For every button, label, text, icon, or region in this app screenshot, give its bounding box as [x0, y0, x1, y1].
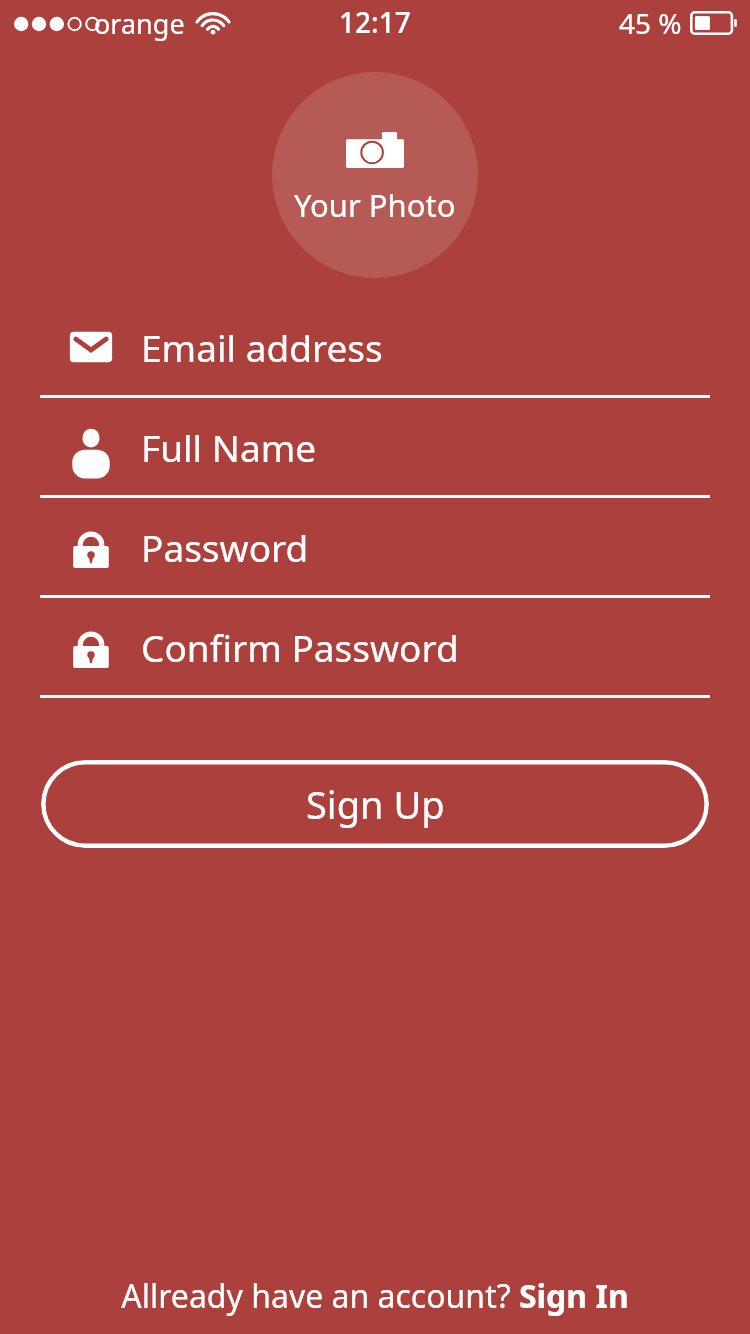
- staticText: Email address: [141, 322, 383, 372]
- staticText: Allready have an account? Sign In: [121, 1274, 629, 1318]
- staticText: 45 %: [619, 4, 682, 42]
- staticText: 12:17: [339, 3, 411, 41]
- button[interactable]: Email address: [40, 298, 710, 398]
- staticText: Your Photo: [294, 184, 456, 226]
- button[interactable]: Allready have an account? Sign In: [0, 1258, 750, 1334]
- staticText: Full Name: [141, 422, 317, 472]
- staticText: Confirm Password: [141, 622, 459, 672]
- button[interactable]: Password: [40, 498, 710, 598]
- button[interactable]: Sign Up: [41, 760, 709, 848]
- staticText: orange: [94, 5, 185, 42]
- button[interactable]: Full Name: [40, 398, 710, 498]
- staticText: Sign Up: [306, 778, 445, 830]
- staticText: Password: [141, 522, 309, 572]
- button[interactable]: Choose your photo: [272, 72, 478, 278]
- button[interactable]: Confirm Password: [40, 598, 710, 698]
